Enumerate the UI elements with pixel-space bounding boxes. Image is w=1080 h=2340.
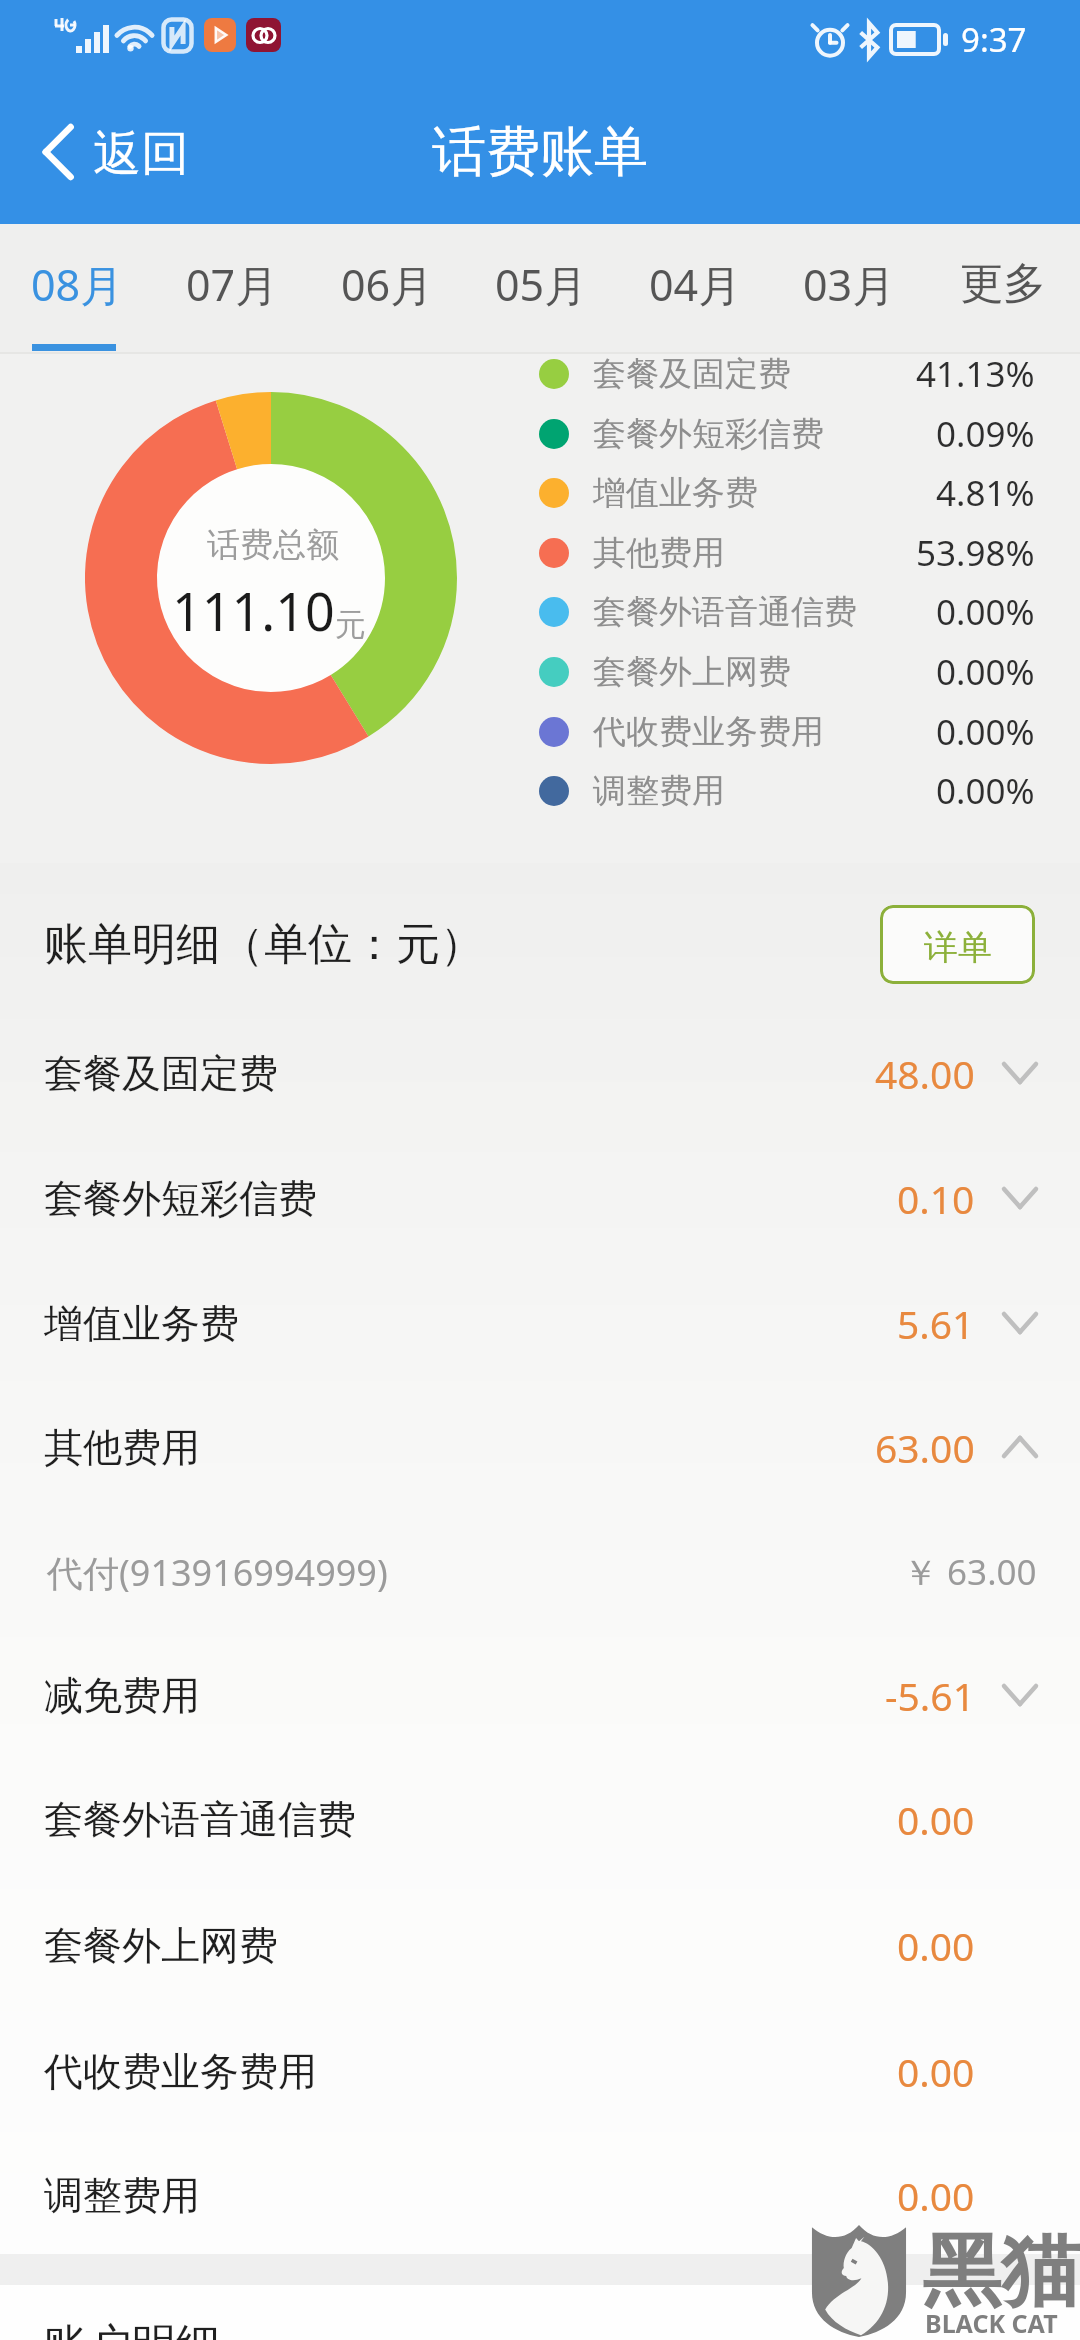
staticText: 账单明细（单位：元） <box>44 917 484 972</box>
button[interactable]: 套餐外语音通信费 <box>0 1757 1080 1881</box>
staticText: 代收费业务费用 <box>593 711 824 753</box>
button[interactable]: 调整费用 <box>0 2133 1080 2257</box>
staticText: 其他费用 <box>593 532 725 574</box>
staticText: 0.00% <box>936 767 1035 815</box>
button[interactable]: 套餐外语音通信费 <box>530 582 1050 642</box>
staticText: 代付(913916994999) <box>47 1548 388 1597</box>
staticText: 套餐外语音通信费 <box>44 1795 356 1844</box>
staticText: 48.00 <box>875 1047 975 1100</box>
button[interactable]: 详单 <box>880 905 1035 984</box>
staticText: 元 <box>335 605 366 644</box>
staticText: 套餐及固定费 <box>44 1049 278 1098</box>
button[interactable]: 其他费用 <box>530 523 1050 583</box>
staticText: ￥ 63.00 <box>903 1548 1037 1596</box>
button[interactable]: 套餐外上网费 <box>530 642 1050 702</box>
button[interactable]: 04月 <box>618 224 772 352</box>
staticText: 41.13% <box>916 350 1035 398</box>
button[interactable]: 07月 <box>155 224 310 352</box>
staticText: 增值业务费 <box>593 472 758 514</box>
staticText: 0.09% <box>936 410 1035 458</box>
staticText: 套餐外上网费 <box>44 1921 278 1970</box>
button[interactable]: 代收费业务费用 <box>530 702 1050 762</box>
staticText: 07月 <box>186 255 279 314</box>
button[interactable]: 套餐外短彩信费 <box>530 404 1050 464</box>
button[interactable]: 账户明细 <box>0 2285 1080 2340</box>
staticText: 5.61 <box>897 1297 975 1350</box>
staticText: 套餐外上网费 <box>593 651 791 693</box>
staticText: 0.00% <box>936 648 1035 696</box>
staticText: 套餐外语音通信费 <box>593 591 857 633</box>
staticText: 06月 <box>341 255 434 314</box>
staticText: 更多 <box>960 257 1046 311</box>
button[interactable]: 调整费用 <box>530 761 1050 821</box>
button[interactable]: 08月 <box>0 224 155 352</box>
staticText: 话费总额 <box>207 524 339 566</box>
staticText: 减免费用 <box>44 1671 200 1720</box>
button[interactable]: 代付(913916994999) <box>0 1510 1080 1634</box>
staticText: BLACK CAT <box>925 2306 1058 2340</box>
staticText: 03月 <box>803 255 896 314</box>
staticText: 4.81% <box>936 469 1035 517</box>
button[interactable]: 套餐及固定费 <box>0 1011 1080 1135</box>
staticText: 账户明细 <box>44 2318 220 2340</box>
button[interactable]: 增值业务费 <box>0 1261 1080 1385</box>
staticText: 其他费用 <box>44 1423 200 1472</box>
button[interactable]: 套餐外短彩信费 <box>0 1136 1080 1260</box>
staticText: 黑猫 <box>922 2222 1080 2322</box>
staticText: 05月 <box>495 255 588 314</box>
button[interactable]: 返回 <box>36 110 197 194</box>
staticText: 套餐外短彩信费 <box>44 1174 317 1223</box>
staticText: 0.00 <box>897 1919 975 1972</box>
staticText: 调整费用 <box>593 770 725 812</box>
staticText: 0.00 <box>897 1793 975 1846</box>
staticText: 套餐及固定费 <box>593 353 791 395</box>
button[interactable]: 增值业务费 <box>530 463 1050 523</box>
staticText: 111.10 <box>172 575 335 646</box>
staticText: 0.10 <box>897 1172 975 1225</box>
button[interactable]: 套餐及固定费 <box>530 344 1050 404</box>
staticText: 63.00 <box>875 1421 975 1474</box>
staticText: 代收费业务费用 <box>44 2047 317 2096</box>
staticText: 返回 <box>93 124 189 184</box>
staticText: 08月 <box>31 255 124 314</box>
button[interactable]: 代收费业务费用 <box>0 2009 1080 2133</box>
staticText: 详单 <box>924 926 992 969</box>
staticText: 04月 <box>649 255 742 314</box>
staticText: -5.61 <box>885 1669 975 1722</box>
button[interactable]: 其他费用 <box>0 1385 1080 1509</box>
staticText: 增值业务费 <box>44 1299 239 1348</box>
staticText: 53.98% <box>916 529 1035 577</box>
staticText: 0.00 <box>897 2169 975 2222</box>
button[interactable]: 05月 <box>464 224 618 352</box>
staticText: 0.00% <box>936 708 1035 756</box>
staticText: 话费账单 <box>432 118 648 186</box>
button[interactable]: 03月 <box>772 224 926 352</box>
button[interactable]: 更多 <box>926 224 1080 352</box>
button[interactable]: 套餐外上网费 <box>0 1883 1080 2007</box>
staticText: 0.00% <box>936 588 1035 636</box>
button[interactable]: 减免费用 <box>0 1633 1080 1757</box>
button[interactable]: 06月 <box>310 224 464 352</box>
staticText: 9:37 <box>961 17 1027 62</box>
staticText: 0.00 <box>897 2045 975 2098</box>
staticText: 调整费用 <box>44 2171 200 2220</box>
staticText: 套餐外短彩信费 <box>593 413 824 455</box>
